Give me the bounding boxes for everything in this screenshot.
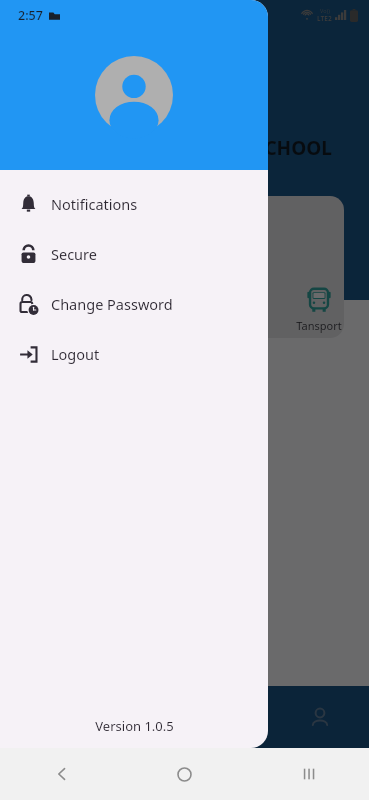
staticText: PUBLIC SCHOOL: [180, 135, 332, 161]
staticText: Secure: [51, 244, 97, 264]
button[interactable]: Secure: [0, 229, 268, 279]
button[interactable]: Profile: [300, 697, 340, 737]
staticText: 2:57: [18, 7, 43, 24]
button[interactable]: Recent apps: [246, 748, 369, 800]
button[interactable]: Tansport: [282, 286, 356, 333]
button[interactable]: Notifications: [0, 179, 268, 229]
button[interactable]: Home: [123, 748, 246, 800]
staticText: Tansport: [296, 318, 342, 333]
button[interactable]: Change Password: [0, 279, 268, 329]
button[interactable]: Profile picture: [95, 56, 173, 134]
staticText: Vo)): [320, 7, 330, 14]
staticText: LTE2: [317, 14, 332, 23]
button[interactable]: [24, 196, 344, 338]
button[interactable]: Logout: [0, 329, 268, 379]
staticText: Notifications: [51, 194, 138, 214]
staticText: Logout: [51, 344, 100, 364]
staticText: Version 1.0.5: [95, 717, 174, 735]
button[interactable]: Back: [0, 748, 123, 800]
staticText: Change Password: [51, 294, 173, 314]
